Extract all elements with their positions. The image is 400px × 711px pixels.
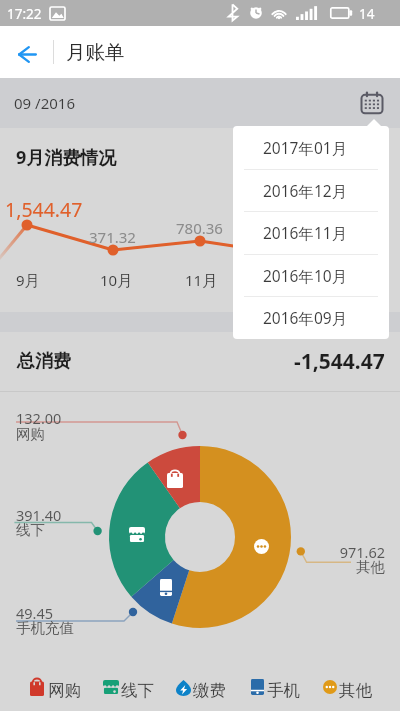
staticText: 09 /2016 (14, 93, 75, 113)
staticText: 线下 (16, 521, 45, 539)
staticText: 11月 (185, 270, 218, 290)
button[interactable]: 其他 (317, 668, 376, 706)
staticText: 2016年10月 (263, 265, 348, 286)
staticText: 49.45 (16, 603, 54, 623)
button[interactable]: 手机 (245, 668, 304, 706)
button[interactable]: 2017年01月 (233, 126, 389, 169)
staticText: 缴费 (193, 680, 226, 701)
staticText: 391.40 (16, 505, 62, 525)
staticText: 手机 (267, 680, 300, 701)
staticText: 971.62 (285, 542, 385, 562)
staticText: 其他 (339, 680, 372, 701)
button[interactable]: 网购 (24, 668, 85, 706)
staticText: 2016年11月 (263, 222, 348, 243)
staticText: 总消费 (17, 350, 71, 373)
staticText: 780.36 (176, 218, 223, 238)
button[interactable]: 缴费 (170, 668, 230, 706)
button[interactable]: Pick month (352, 83, 392, 123)
staticText: 17:22 (7, 5, 42, 23)
staticText: 其他 (285, 558, 385, 576)
staticText: 9月 (16, 270, 40, 290)
staticText: 网购 (16, 425, 45, 443)
button[interactable]: 2016年12月 (233, 169, 389, 212)
staticText: 132.00 (16, 408, 62, 428)
button[interactable]: Back (4, 26, 50, 78)
staticText: 2016年09月 (263, 307, 348, 328)
staticText: 手机充值 (16, 619, 74, 637)
staticText: 10月 (100, 270, 133, 290)
button[interactable]: 2016年11月 (233, 211, 389, 254)
staticText: 2016年12月 (263, 180, 348, 201)
staticText: 1,544.47 (5, 196, 83, 223)
staticText: 月账单 (66, 40, 125, 65)
button[interactable]: 2016年10月 (233, 254, 389, 297)
staticText: 14 (359, 5, 375, 23)
staticText: 2017年01月 (263, 137, 348, 158)
staticText: 网购 (48, 680, 81, 701)
staticText: 9月消费情况 (16, 145, 117, 170)
staticText: 371.32 (89, 227, 136, 247)
button[interactable]: 线下 (97, 668, 158, 706)
button[interactable]: 2016年09月 (233, 296, 389, 339)
staticText: -1,544.47 (294, 347, 385, 376)
staticText: 线下 (121, 680, 154, 701)
